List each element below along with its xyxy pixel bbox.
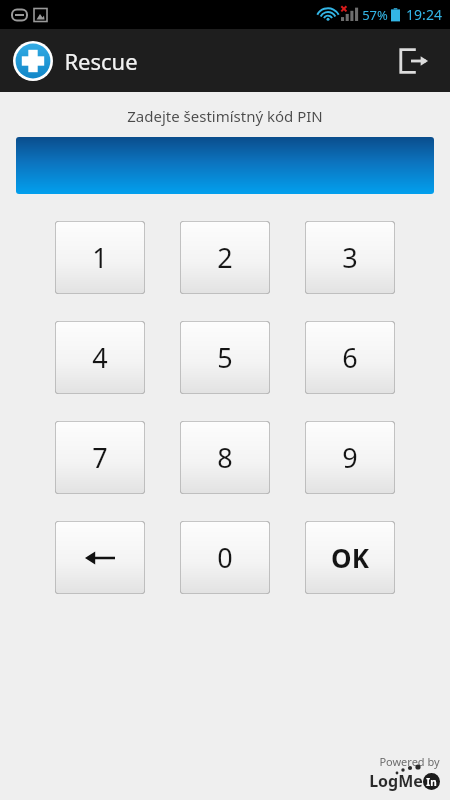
staticText: 9 (342, 439, 358, 476)
button[interactable]: Backspace (55, 521, 145, 594)
staticText: OK (331, 540, 369, 575)
staticText: 6 (342, 339, 358, 376)
staticText: LogMe (369, 770, 423, 792)
button[interactable]: 2 (180, 221, 270, 294)
staticText: 7 (92, 439, 108, 476)
button[interactable]: 4 (55, 321, 145, 394)
button[interactable]: 5 (180, 321, 270, 394)
button[interactable]: OK (305, 521, 395, 594)
staticText: 1 (92, 239, 108, 276)
button[interactable]: Log out (386, 33, 442, 89)
staticText: Powered by (379, 754, 440, 769)
staticText: 5 (217, 339, 233, 376)
button[interactable]: 0 (180, 521, 270, 594)
button[interactable] (16, 137, 434, 194)
button[interactable]: 6 (305, 321, 395, 394)
staticText: 2 (217, 239, 233, 276)
button[interactable]: 1 (55, 221, 145, 294)
staticText: 57% (362, 6, 388, 24)
staticText: Rescue (64, 46, 138, 76)
staticText: 8 (217, 439, 233, 476)
staticText: In (426, 775, 437, 789)
staticText: 3 (342, 239, 358, 276)
staticText: 19:24 (406, 5, 442, 24)
staticText: 0 (217, 539, 233, 576)
button[interactable]: 7 (55, 421, 145, 494)
staticText: 4 (92, 339, 108, 376)
button[interactable]: 3 (305, 221, 395, 294)
staticText: Zadejte šestimístný kód PIN (127, 106, 323, 126)
button[interactable]: 8 (180, 421, 270, 494)
button[interactable]: 9 (305, 421, 395, 494)
